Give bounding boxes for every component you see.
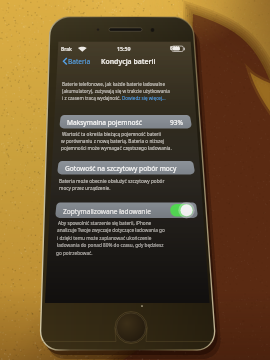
- staticText: Kondycja baterii: [101, 57, 156, 66]
- staticText: analizuje Twoje zwyczaje dotyczące ładow…: [57, 227, 165, 233]
- staticText: Gotowość na szczytowy pobór mocy: [65, 164, 177, 173]
- staticText: 93%: [170, 118, 184, 127]
- staticText: Maksymalna pojemność: [67, 118, 142, 127]
- button[interactable]: Zoptymalizowane ładowanie: [56, 203, 197, 218]
- button[interactable]: Back to Bateria: [59, 55, 94, 67]
- staticText: ładowania do ponad 80% do czasu, gdy będ…: [57, 242, 164, 248]
- button[interactable]: Gotowość na szczytowy pobór mocy: [58, 161, 194, 174]
- staticText: 15:59: [117, 45, 131, 52]
- staticText: mocy przez urządzenie.: [59, 185, 111, 191]
- button[interactable]: Optimised battery charging toggle: [170, 204, 194, 217]
- staticText: Aby spowolnić starzenie się baterii, iPh…: [58, 220, 152, 226]
- staticText: w porównaniu z nową baterią. Bateria o n…: [61, 138, 165, 144]
- staticText: Brak: [61, 46, 72, 53]
- staticText: i dzięki temu może zaplanować ukończenie: [57, 235, 152, 241]
- staticText: Bateria: [68, 57, 91, 66]
- staticText: 61%: [170, 45, 180, 52]
- staticText: go potrzebować.: [56, 250, 93, 256]
- staticText: Baterie telefonowe, jak każde baterie ła…: [62, 81, 170, 101]
- staticText: Wartość ta określa bieżącą pojemność bat…: [62, 131, 161, 137]
- button[interactable]: Maksymalna pojemność: [60, 115, 191, 128]
- staticText: pojemności może wymagać częstszego ładow…: [61, 145, 172, 151]
- staticText: Bateria może obecnie obsłużyć szczytowy …: [59, 178, 165, 184]
- staticText: Zoptymalizowane ładowanie: [63, 207, 151, 216]
